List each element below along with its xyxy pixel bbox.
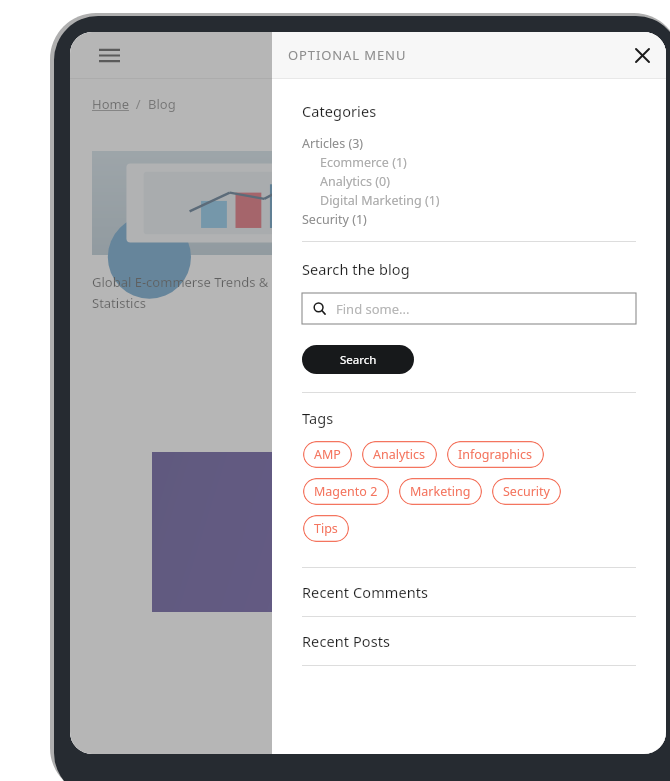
staticText: Recent Posts [302,631,391,651]
button[interactable]: Ecommerce (1) [302,153,636,172]
staticText: Tags [302,408,334,428]
button[interactable]: Search [302,345,414,374]
button[interactable]: Security (1) [302,210,636,229]
staticText: Recent Comments [302,582,429,602]
staticText: Ecommerce (1) [320,154,407,171]
staticText: Analytics (0) [320,173,390,190]
staticText: Digital Marketing (1) [320,192,440,209]
button[interactable]: Magento 2 [302,477,390,506]
button[interactable]: Digital Marketing (1) [302,191,636,210]
staticText: Categories [302,101,377,121]
button[interactable]: Infographics [446,440,545,469]
staticText: Security (1) [302,211,367,228]
button[interactable]: AMP [302,440,353,469]
staticText: AMP [314,446,341,463]
button[interactable]: Marketing [398,477,483,506]
button[interactable]: Open navigation menu [92,38,126,72]
button[interactable]: Close menu [624,37,660,73]
button[interactable]: Find some... [302,293,636,324]
staticText: Marketing [410,483,471,500]
staticText: / [129,95,148,113]
staticText: Blog [148,95,176,113]
staticText: OPTIONAL MENU [288,46,407,64]
button[interactable] [92,151,666,255]
button[interactable]: Home [92,95,129,113]
staticText: Analytics [373,446,426,463]
staticText: Global E-commerse Trends & [92,273,269,291]
button[interactable]: Tips [302,514,350,543]
button[interactable]: Recent Posts [302,617,636,665]
staticText: Search the blog [302,259,410,279]
button[interactable]: Articles (3) [302,134,636,153]
staticText: Tips [314,520,338,537]
button[interactable]: Recent Comments [302,568,636,616]
staticText: Infographics [458,446,533,463]
button[interactable]: Analytics (0) [302,172,636,191]
button[interactable]: Analytics [361,440,438,469]
staticText: Security [503,483,550,500]
button[interactable] [152,452,666,612]
staticText: Statistics [92,294,146,312]
staticText: Magento 2 [314,483,378,500]
staticText: Articles (3) [302,135,364,152]
button[interactable]: Security [491,477,562,506]
staticText: Find some... [336,300,410,318]
staticText: Search [340,352,377,368]
